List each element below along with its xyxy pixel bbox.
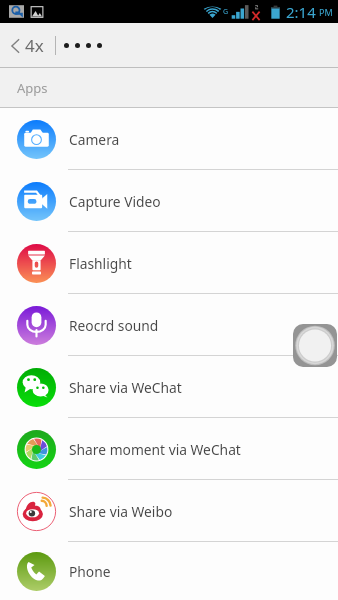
staticText: PM [319,6,333,18]
button[interactable]: Capture Video [0,170,338,232]
button[interactable]: More options [56,31,110,60]
button[interactable]: 4x [0,25,55,66]
staticText: Share via WeChat [69,378,182,397]
staticText: Apps [17,79,48,97]
staticText: Reocrd sound [69,316,159,335]
staticText: Flashlight [69,254,132,273]
button[interactable]: Assistive touch [293,324,337,367]
button[interactable]: Flashlight [0,232,338,294]
button[interactable]: Phone [0,540,338,600]
staticText: Phone [69,562,111,581]
staticText: 2:14 [286,2,316,22]
staticText: Share via Weibo [69,502,173,521]
button[interactable]: Share via WeChat [0,356,338,418]
staticText: 4x [25,34,44,57]
button[interactable]: Reocrd sound [0,294,338,356]
button[interactable]: Camera [0,108,338,170]
staticText: G [223,7,229,17]
staticText: Camera [69,130,120,149]
button[interactable]: Share moment via WeChat [0,418,338,480]
staticText: Share moment via WeChat [69,440,241,459]
staticText: Capture Video [69,192,161,211]
button[interactable]: Share via Weibo [0,480,338,542]
